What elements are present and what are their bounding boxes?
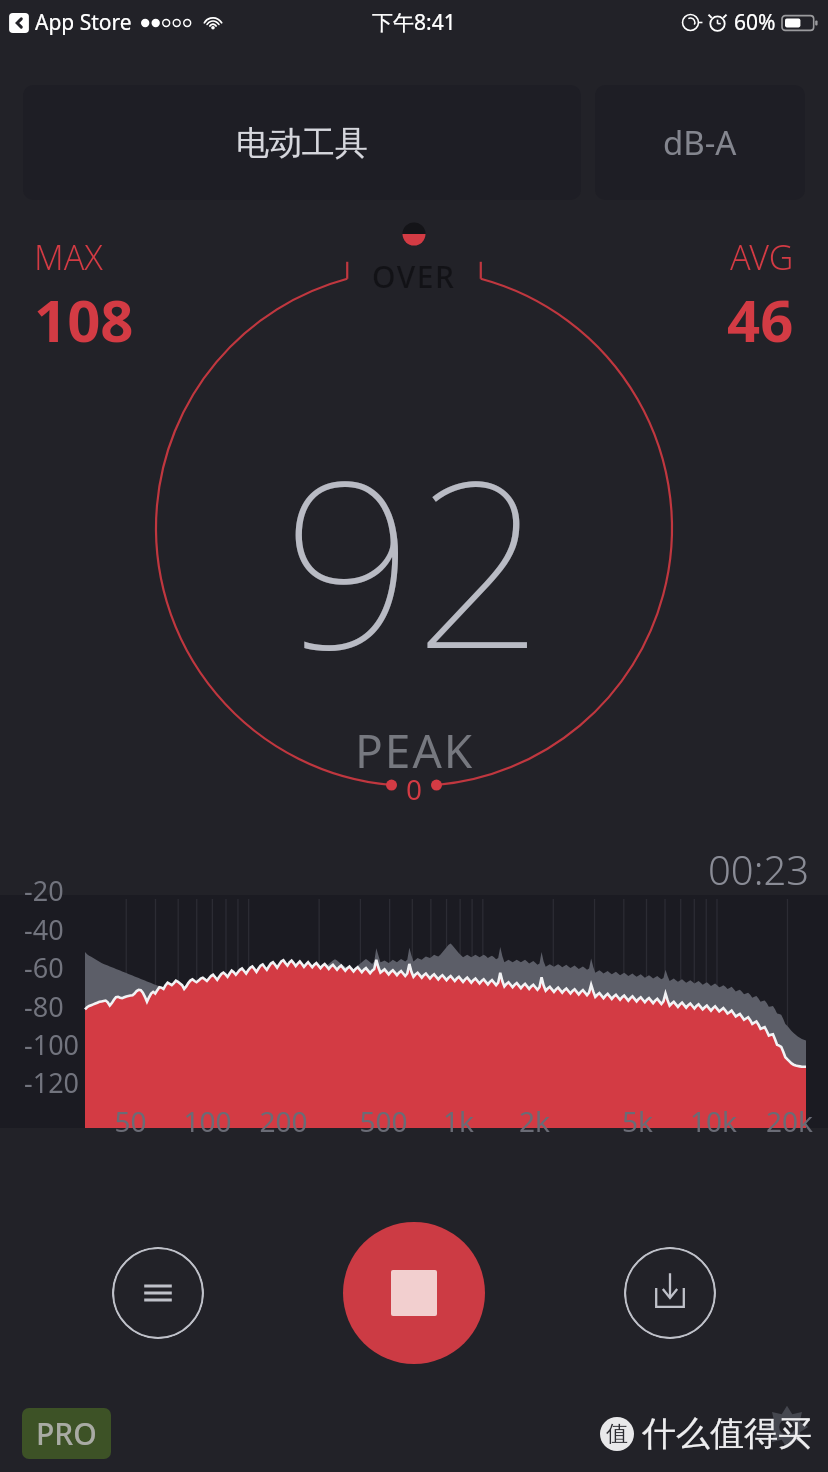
button[interactable]: Stop recording xyxy=(343,1222,485,1364)
staticText: 100 xyxy=(183,1102,232,1140)
staticText: -80 xyxy=(24,988,64,1025)
staticText: 200 xyxy=(259,1102,308,1140)
staticText: 50 xyxy=(114,1102,147,1140)
staticText: AVG xyxy=(730,234,794,280)
staticText: OVER xyxy=(372,256,456,297)
button[interactable]: Menu xyxy=(112,1247,204,1339)
button[interactable]: Save xyxy=(624,1247,716,1339)
staticText: -20 xyxy=(24,872,64,909)
staticText: 00:23 xyxy=(708,842,810,896)
button[interactable]: 电动工具 xyxy=(23,85,581,200)
staticText: PEAK xyxy=(355,719,475,782)
staticText: 500 xyxy=(359,1102,408,1140)
staticText: 5k xyxy=(622,1102,653,1140)
staticText: -40 xyxy=(24,911,64,948)
staticText: 2k xyxy=(519,1102,550,1140)
staticText: 20k xyxy=(766,1102,813,1140)
staticText: 92 xyxy=(283,402,546,715)
button[interactable]: dB-A xyxy=(595,85,805,200)
staticText: 46 xyxy=(727,280,794,359)
staticText: 60% xyxy=(734,8,776,37)
staticText: 值 xyxy=(606,1420,628,1448)
staticText: 什么值得买 xyxy=(642,1412,812,1455)
staticText: 0 xyxy=(406,770,423,808)
staticText: 108 xyxy=(34,280,134,359)
staticText: PRO xyxy=(36,1413,97,1454)
staticText: -120 xyxy=(24,1064,80,1101)
staticText: MAX xyxy=(34,234,103,280)
staticText: -60 xyxy=(24,949,64,986)
staticText: 10k xyxy=(690,1102,737,1140)
button[interactable]: Settings xyxy=(764,1404,810,1450)
staticText: App Store xyxy=(35,8,132,37)
staticText: dB-A xyxy=(663,120,737,165)
staticText: -100 xyxy=(24,1026,80,1063)
staticText: 下午8:41 xyxy=(372,8,456,37)
button[interactable]: PRO xyxy=(36,1413,97,1454)
staticText: 电动工具 xyxy=(236,122,368,164)
staticText: 1k xyxy=(443,1102,474,1140)
